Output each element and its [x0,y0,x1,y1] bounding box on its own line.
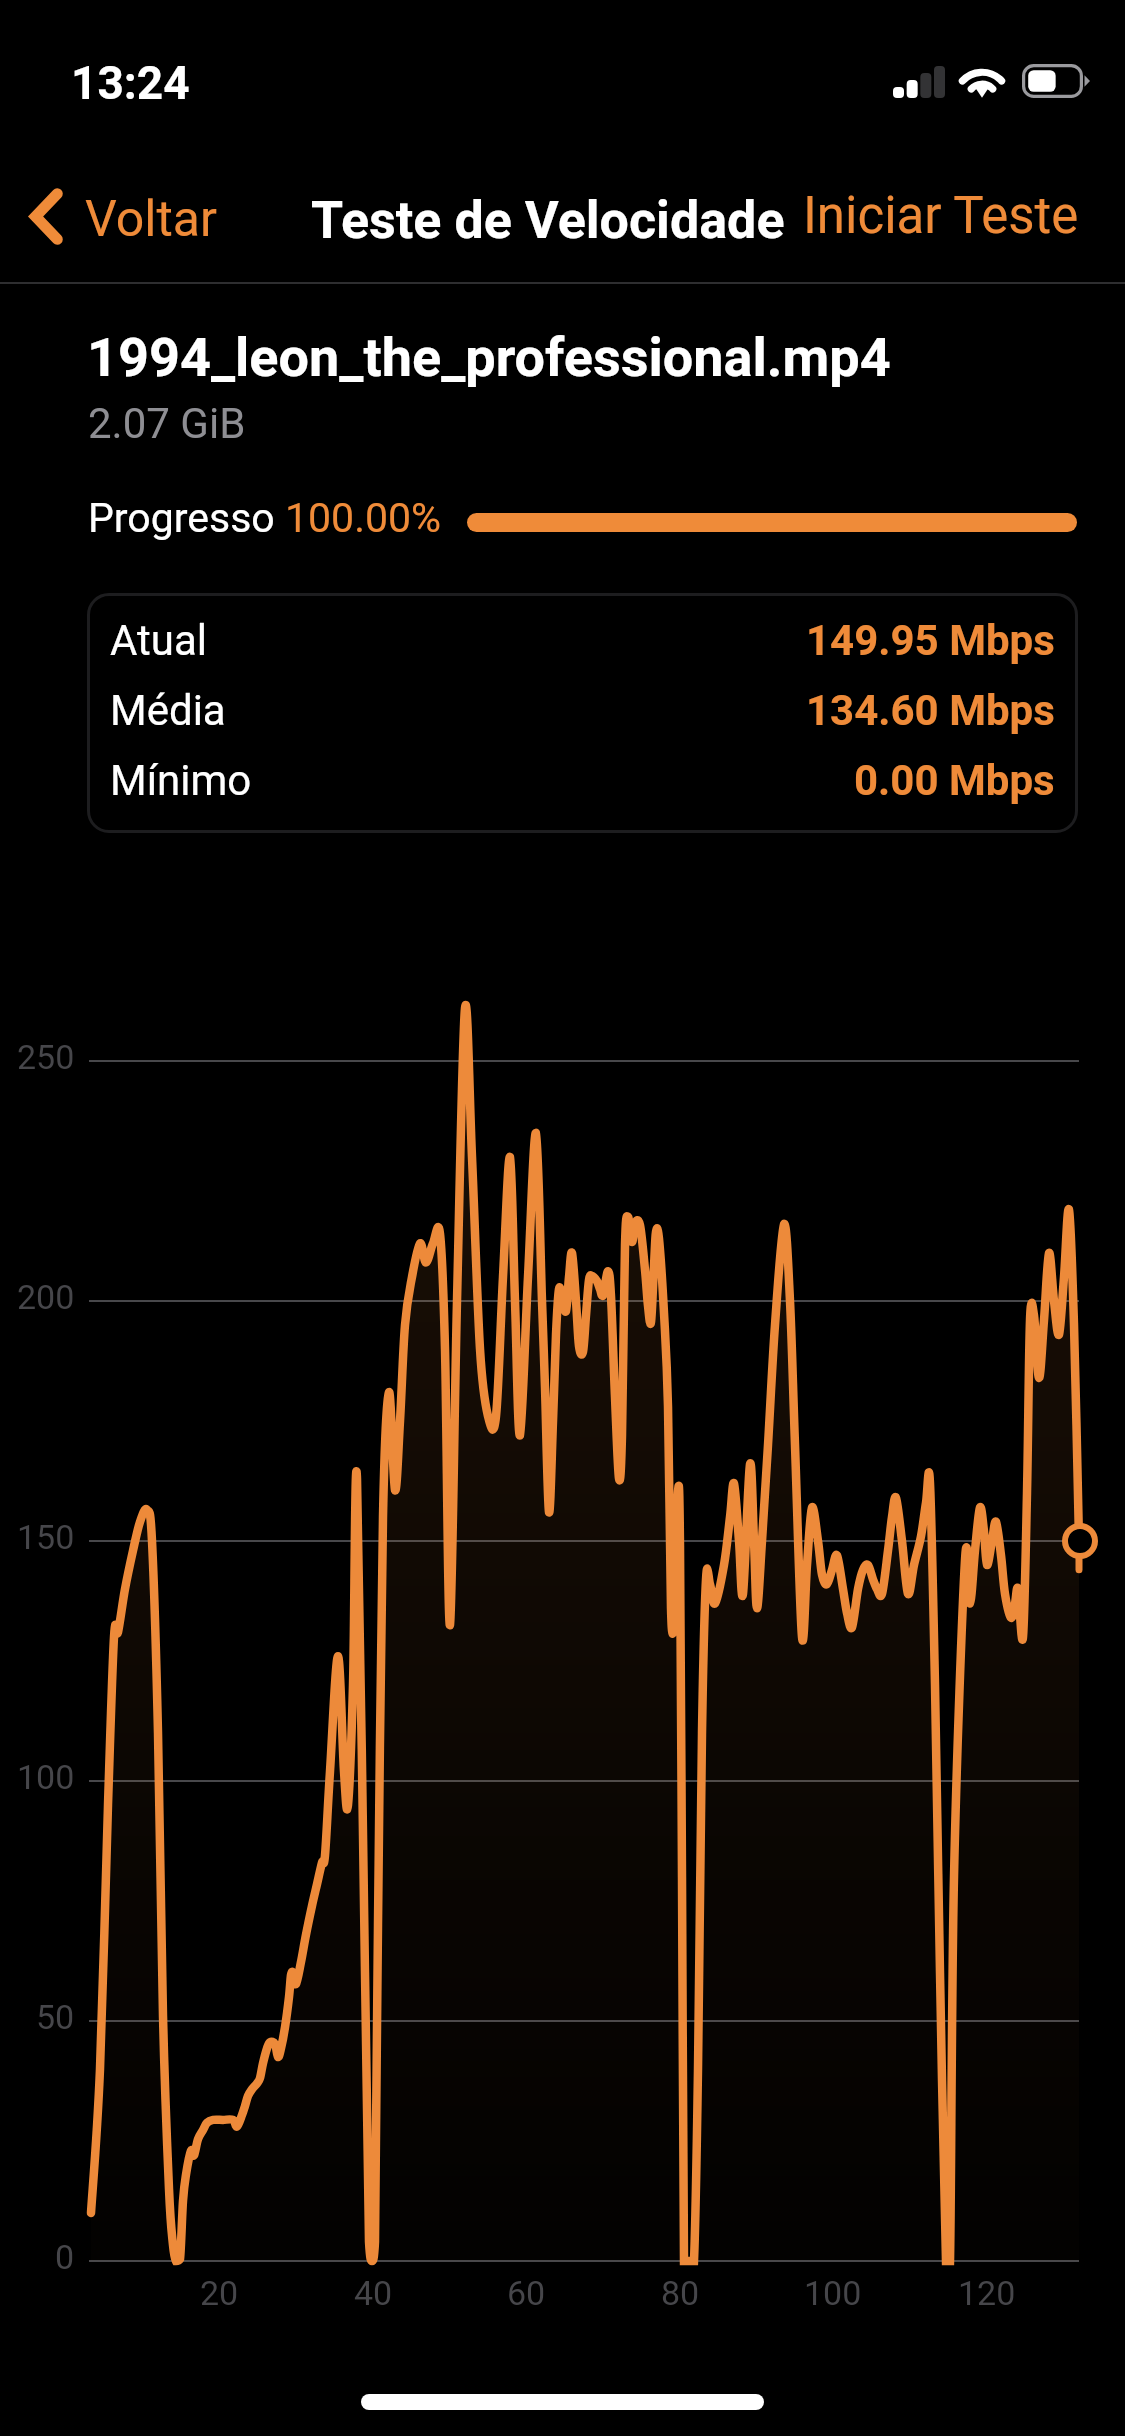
staticText: 149.95 Mbps [806,616,1055,665]
staticText: 60 [507,2273,546,2313]
staticText: 200 [17,1277,75,1317]
button[interactable]: Atual [87,605,1078,675]
button[interactable]: Mínimo [87,745,1078,815]
staticText: 250 [17,1037,75,1077]
staticText: Média [110,686,226,735]
staticText: 80 [661,2273,700,2313]
staticText: 1994_leon_the_professional.mp4 [87,326,891,389]
staticText: 2.07 GiB [88,399,246,448]
staticText: Voltar [85,190,217,249]
staticText: 0.00 Mbps [854,756,1055,805]
staticText: 150 [17,1517,75,1557]
staticText: 20 [200,2273,239,2313]
other: Voltar [30,188,61,245]
staticText: 134.60 Mbps [806,686,1055,735]
button[interactable]: Iniciar Teste [789,180,1093,252]
staticText: 0 [55,2237,75,2277]
staticText: Iniciar Teste [803,186,1079,246]
staticText: Atual [110,616,208,665]
button[interactable]: Voltar [0,183,231,255]
staticText: 13:24 [71,56,190,110]
staticText: 100 [804,2273,862,2313]
staticText: Teste de Velocidade [311,190,785,251]
staticText: Progresso [88,494,285,542]
staticText: 120 [958,2273,1016,2313]
staticText: 50 [36,1997,75,2037]
staticText: Mínimo [110,756,252,805]
staticText: 100.00% [285,494,442,542]
staticText: 100 [17,1757,75,1797]
button[interactable]: Média [87,675,1078,745]
staticText: 40 [354,2273,393,2313]
